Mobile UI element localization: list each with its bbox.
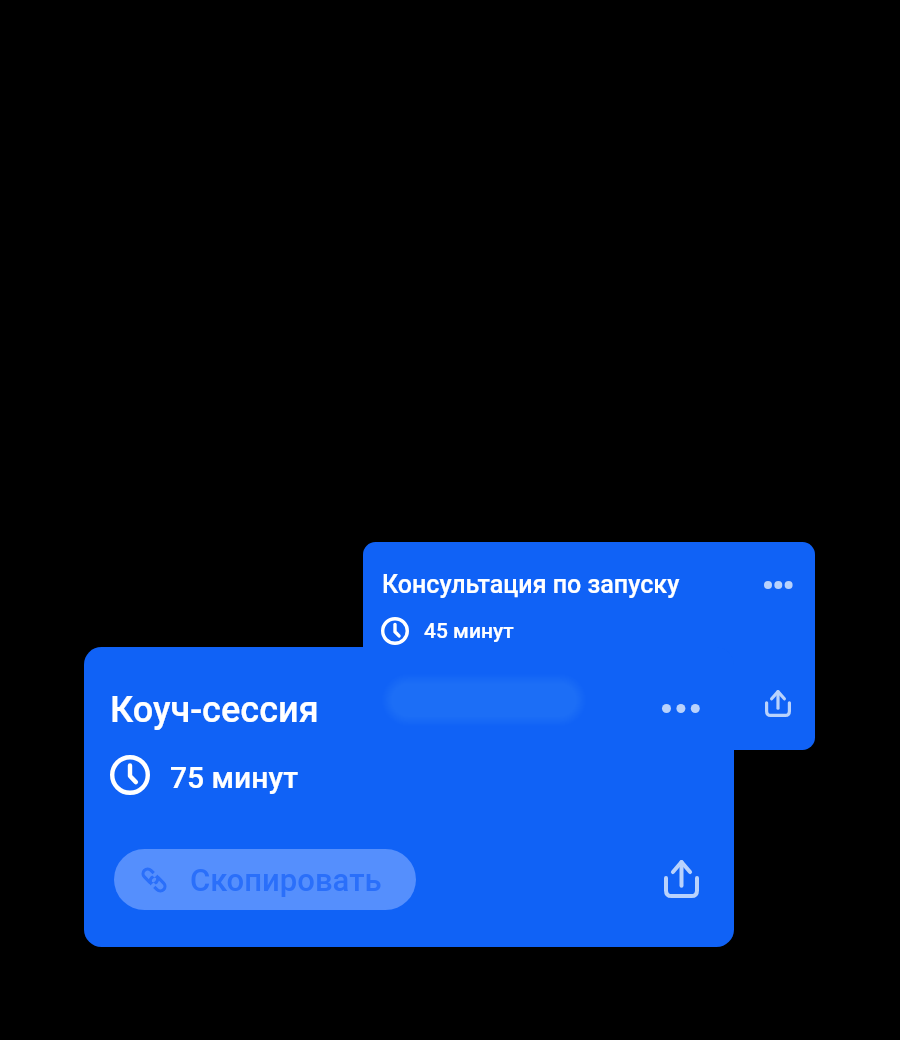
staticText: Коуч-сессия [110, 689, 319, 731]
staticText: Консультация по запуску [382, 570, 680, 599]
button[interactable]: Консультация по запуску [363, 542, 815, 750]
staticText: 45 минут [424, 619, 514, 644]
button[interactable]: Коуч-сессия [84, 647, 734, 947]
staticText: Скопировать [190, 862, 382, 898]
button[interactable]: Share [664, 860, 699, 898]
button[interactable]: More options [764, 581, 792, 589]
button[interactable]: Скопировать [114, 849, 416, 910]
button[interactable]: More options [662, 704, 700, 713]
button[interactable]: Share [765, 690, 791, 717]
staticText: 75 минут [170, 760, 299, 795]
